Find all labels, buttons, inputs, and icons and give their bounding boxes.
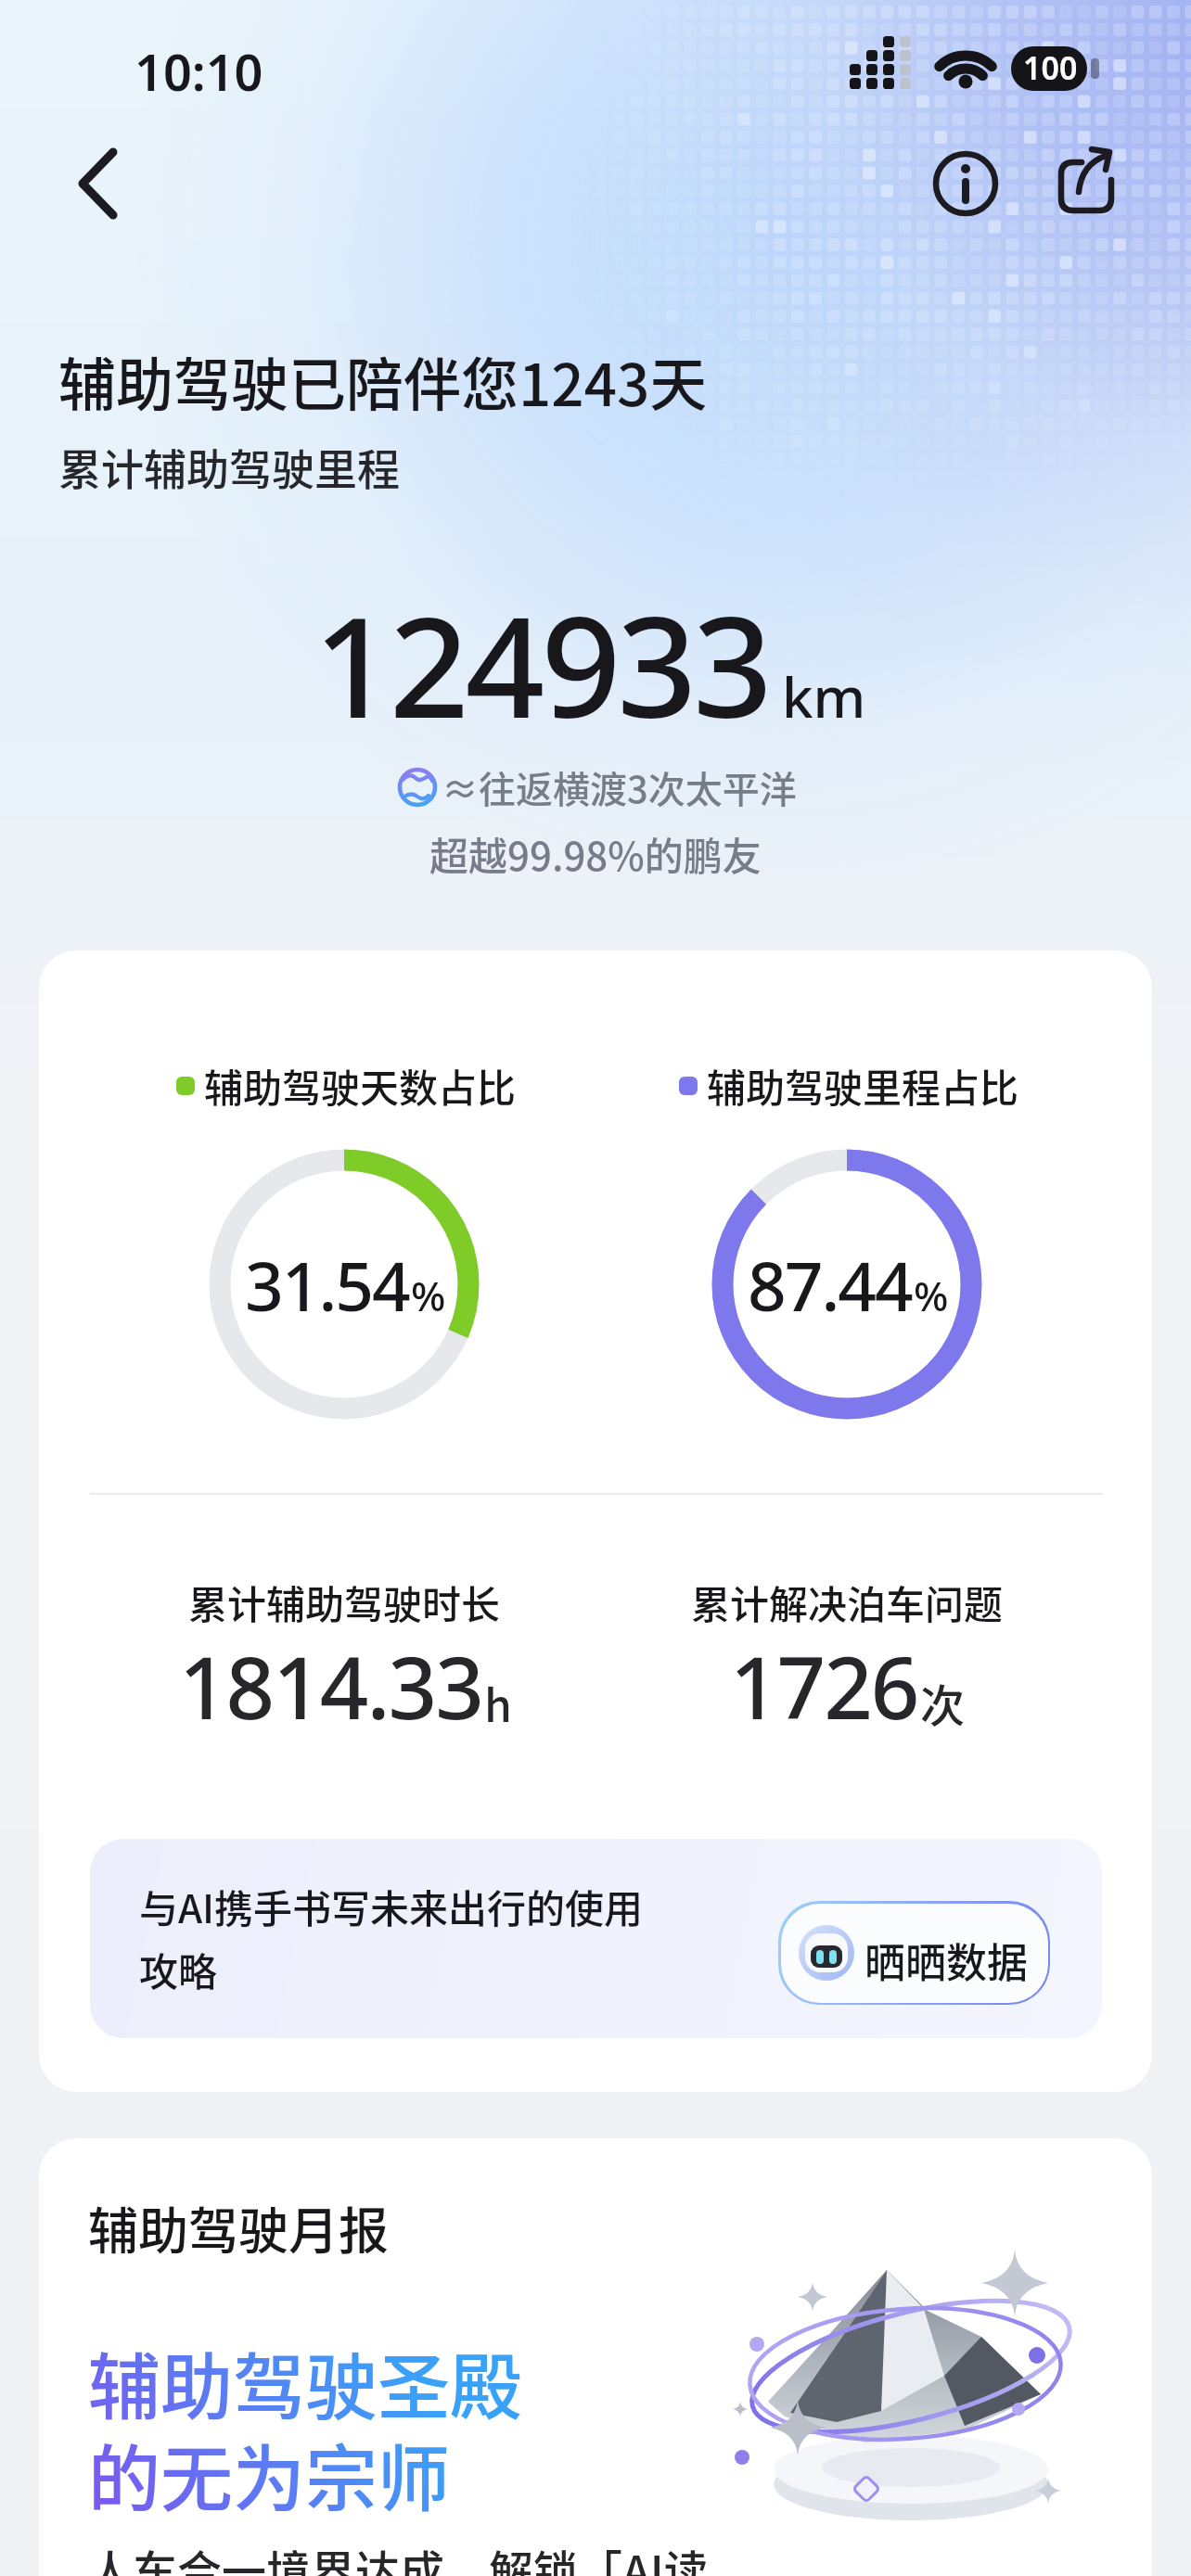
staticText: 人车合一境界达成，解锁「AI读	[88, 2536, 709, 2576]
staticText: 辅助驾驶里程占比	[707, 1057, 1019, 1114]
staticText: h	[484, 1670, 512, 1735]
staticText: 31.54	[245, 1239, 409, 1331]
button[interactable]	[65, 139, 148, 228]
staticText: 累计辅助驾驶时长	[188, 1574, 501, 1630]
staticText: 累计解决泊车问题	[691, 1574, 1004, 1630]
staticText: 1814.33	[179, 1628, 482, 1744]
staticText: 累计辅助驾驶里程	[58, 436, 400, 498]
staticText: 晒晒数据	[864, 1931, 1028, 1990]
staticText: 10:10	[134, 37, 263, 106]
staticText: 辅助驾驶天数占比	[204, 1057, 517, 1114]
staticText: 与AI携手书写未来出行的使用	[139, 1878, 644, 1934]
button[interactable]	[778, 1901, 1050, 2005]
button[interactable]	[39, 2138, 1152, 2576]
staticText: 87.44	[748, 1239, 912, 1331]
staticText: km	[782, 658, 866, 734]
staticText: 1726	[730, 1628, 918, 1744]
staticText: 124933	[314, 569, 769, 734]
staticText: 100	[1023, 46, 1078, 89]
staticText: 辅助驾驶已陪伴您1243天	[58, 339, 708, 423]
button[interactable]	[1044, 141, 1130, 226]
staticText: ≈往返横渡3次太平洋	[442, 760, 797, 814]
staticText: %	[411, 1268, 446, 1323]
staticText: %	[914, 1268, 949, 1323]
staticText: 次	[920, 1670, 966, 1735]
staticText: 攻略	[139, 1941, 218, 1997]
staticText: 辅助驾驶圣殿 的无为宗师	[88, 2330, 523, 2526]
button[interactable]	[39, 950, 1152, 2092]
staticText: 超越99.98%的鹏友	[429, 825, 762, 882]
button[interactable]	[90, 1839, 1102, 2038]
staticText: 辅助驾驶月报	[88, 2191, 389, 2264]
button[interactable]	[923, 141, 1008, 226]
